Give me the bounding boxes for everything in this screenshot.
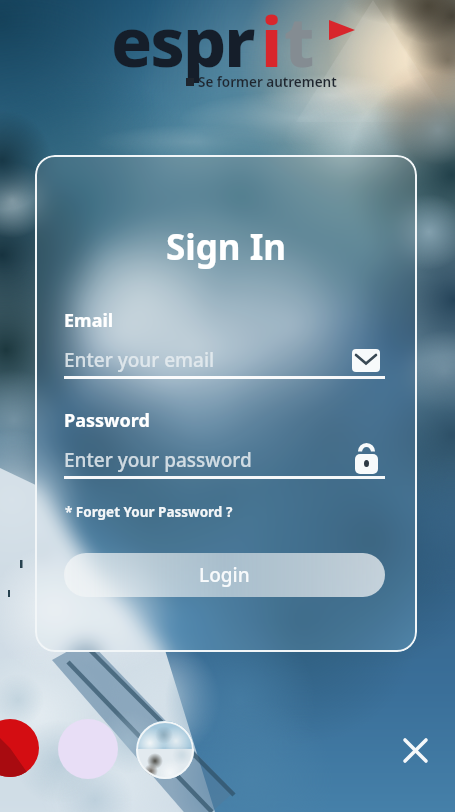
button[interactable] — [0, 719, 39, 777]
button[interactable]: Enter your email — [64, 343, 385, 377]
button[interactable] — [58, 719, 118, 779]
staticText: Sign In — [166, 223, 287, 271]
staticText: Se former autrement — [198, 73, 337, 91]
button[interactable]: * Forget Your Password ? — [65, 503, 233, 521]
button[interactable]: Enter your password — [64, 443, 385, 477]
staticText: i — [261, 0, 283, 87]
button[interactable] — [136, 721, 194, 779]
staticText: Enter your email — [64, 347, 215, 373]
button[interactable]: Login — [64, 553, 385, 597]
staticText: Email — [64, 308, 114, 333]
button[interactable] — [405, 740, 427, 762]
staticText: Login — [199, 562, 250, 588]
staticText: Enter your password — [64, 447, 252, 473]
staticText: t — [284, 0, 315, 87]
staticText: espr — [111, 0, 254, 87]
staticText: * Forget Your Password ? — [65, 503, 233, 521]
staticText: Password — [64, 408, 150, 433]
